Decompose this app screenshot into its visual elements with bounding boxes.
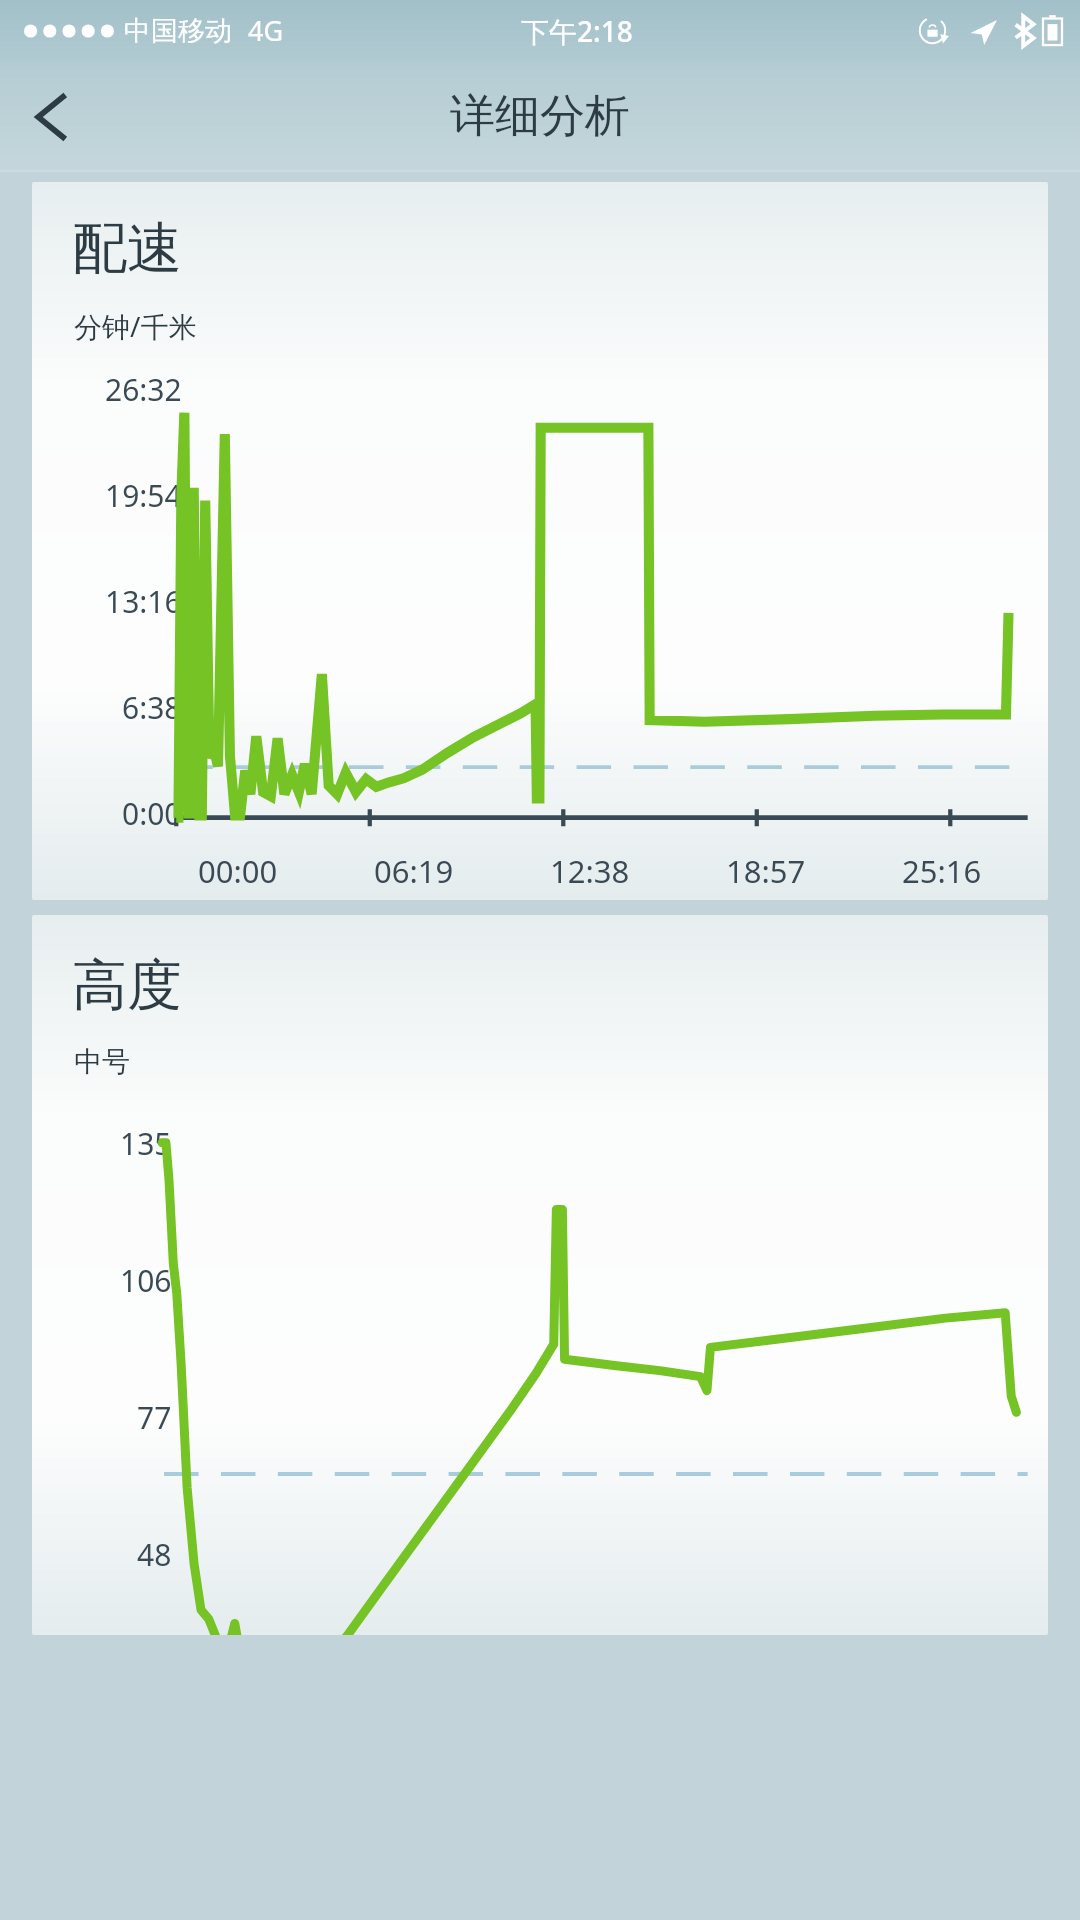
staticText: 12:38	[550, 850, 630, 892]
button[interactable]: Back	[8, 73, 96, 161]
staticText: 6:38	[122, 687, 182, 728]
staticText: 18:57	[726, 850, 806, 892]
staticText: 中国移动	[124, 14, 232, 48]
staticText: 25:16	[902, 850, 982, 892]
staticText: 0:00	[122, 793, 182, 834]
staticText: 77	[137, 1397, 172, 1438]
staticText: 26:32	[105, 369, 182, 410]
staticText: 高度	[72, 951, 182, 1020]
button[interactable]: 高度	[32, 915, 1048, 1635]
staticText: 配速	[72, 214, 182, 283]
staticText: 4G	[248, 12, 284, 49]
staticText: 详细分析	[450, 88, 630, 145]
staticText: 106	[120, 1260, 172, 1301]
staticText: 19:54	[105, 475, 182, 516]
staticText: 48	[137, 1534, 172, 1575]
button[interactable]: 配速	[32, 182, 1048, 900]
staticText: 下午2:18	[521, 12, 633, 50]
staticText: 分钟/千米	[74, 307, 197, 345]
staticText: 135	[120, 1123, 172, 1164]
staticText: 06:19	[374, 850, 454, 892]
staticText: 13:16	[105, 581, 182, 622]
staticText: 中号	[74, 1044, 130, 1079]
staticText: 00:00	[198, 850, 278, 892]
